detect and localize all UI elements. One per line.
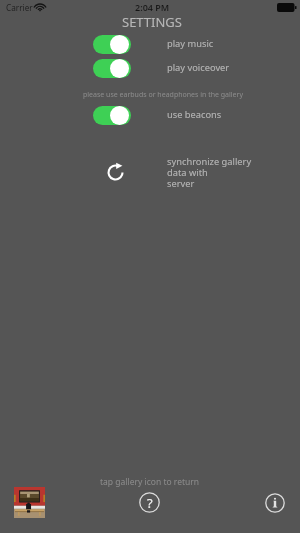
button[interactable]: Gallery <box>14 487 45 518</box>
button[interactable]: Help <box>139 492 160 513</box>
button[interactable] <box>93 35 131 54</box>
staticText: play voiceover <box>167 61 230 74</box>
staticText: ? <box>147 494 153 512</box>
button[interactable] <box>93 106 131 125</box>
staticText: play music <box>167 37 214 50</box>
button[interactable] <box>93 59 131 78</box>
button[interactable]: Information <box>265 493 285 513</box>
staticText: tap gallery icon to return <box>100 476 200 488</box>
staticText: Carrier <box>6 2 33 13</box>
staticText: please use earbuds or headphones in the … <box>83 90 244 100</box>
staticText: 2:04 PM <box>135 1 170 13</box>
button[interactable]: Synchronize gallery data with server <box>106 162 125 181</box>
staticText: use beacons <box>167 108 222 121</box>
staticText: SETTINGS <box>122 13 182 31</box>
staticText: synchronize gallery data with server <box>167 155 252 190</box>
